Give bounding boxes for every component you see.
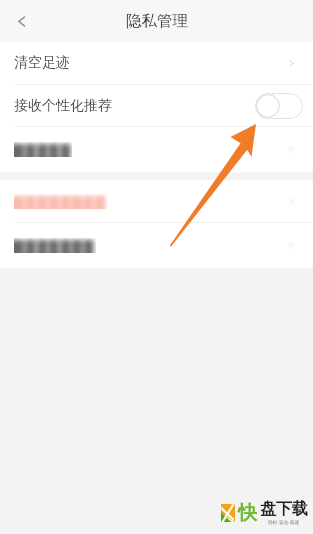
button[interactable]: Back (0, 0, 42, 42)
button[interactable]: ▇▇▇▇▇▇▇ (0, 223, 313, 268)
button[interactable]: ▇▇▇▇▇▇▇▇ (0, 180, 313, 222)
staticText: 接收个性化推荐 (14, 97, 112, 115)
staticText: 隐私管理 (126, 11, 188, 31)
staticText: ▇▇▇▇▇▇▇ (14, 238, 96, 253)
button[interactable]: ▇▇▇▇▇ (0, 127, 313, 172)
staticText: 快 (238, 501, 257, 525)
staticText: ▇▇▇▇▇▇▇▇ (14, 194, 107, 209)
staticText: ▇▇▇▇▇ (14, 142, 72, 157)
staticText: 盘下载 (260, 499, 308, 519)
button[interactable]: Receive personalized recommendations tog… (255, 93, 303, 119)
staticText: 清空足迹 (14, 54, 70, 72)
staticText: 轻松·安全·高速 (268, 519, 300, 526)
button[interactable]: 接收个性化推荐 (0, 85, 313, 126)
button[interactable]: 清空足迹 (0, 42, 313, 84)
